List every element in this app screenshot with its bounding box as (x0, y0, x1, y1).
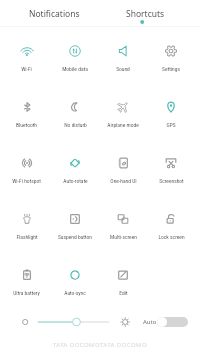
button[interactable]: Flashlight (2, 200, 51, 256)
button[interactable]: Wi-Fi (2, 32, 51, 88)
staticText: No disturb (64, 122, 87, 128)
button[interactable]: No disturb (51, 88, 99, 144)
button[interactable]: Edit (99, 256, 147, 312)
button[interactable]: Mobile data (51, 32, 99, 88)
staticText: One-hand UI (110, 178, 137, 184)
button[interactable]: Notifications (0, 0, 100, 26)
staticText: Wi-Fi (21, 66, 32, 72)
staticText: Settings (162, 66, 180, 72)
staticText: Edit (119, 290, 128, 296)
button[interactable]: Bluetooth (2, 88, 51, 144)
staticText: Ultra battery (13, 290, 40, 296)
button[interactable]: Lock screen (147, 200, 195, 256)
staticText: Suspend button (58, 234, 92, 240)
staticText: Multi-screen (110, 234, 137, 240)
staticText: Wi-Fi hotspot (12, 178, 41, 184)
staticText: TATA DOCOMOTATA DOCOMO (0, 341, 200, 349)
staticText: Auto-sync (64, 290, 86, 296)
staticText: Auto (143, 318, 157, 326)
button[interactable]: Wi-Fi hotspot (2, 144, 51, 200)
button[interactable]: Suspend button (51, 200, 99, 256)
button[interactable]: Shortcuts (100, 0, 200, 26)
staticText: Notifications (29, 8, 80, 20)
button[interactable]: Ultra battery (2, 256, 51, 312)
staticText: Mobile data (62, 66, 88, 72)
staticText: Shortcuts (126, 8, 165, 20)
button[interactable]: Auto-sync (51, 256, 99, 312)
staticText: Flashlight (16, 234, 38, 240)
staticText: Airplane mode (107, 122, 139, 128)
button[interactable]: Screenshot (147, 144, 195, 200)
staticText: Auto-rotate (63, 178, 88, 184)
button[interactable]: Auto-rotate (51, 144, 99, 200)
staticText: GPS (166, 122, 176, 128)
button[interactable]: One-hand UI (99, 144, 147, 200)
button[interactable]: Sound (99, 32, 147, 88)
button[interactable]: Brightness slider (0, 312, 133, 332)
staticText: Bluetooth (16, 122, 37, 128)
button[interactable]: GPS (147, 88, 195, 144)
button[interactable]: Multi-screen (99, 200, 147, 256)
button[interactable]: Settings (147, 32, 195, 88)
staticText: Sound (116, 66, 130, 72)
button[interactable]: Auto brightness toggle (157, 317, 188, 327)
button[interactable]: Airplane mode (99, 88, 147, 144)
staticText: Screenshot (159, 178, 184, 184)
staticText: Lock screen (158, 234, 185, 240)
